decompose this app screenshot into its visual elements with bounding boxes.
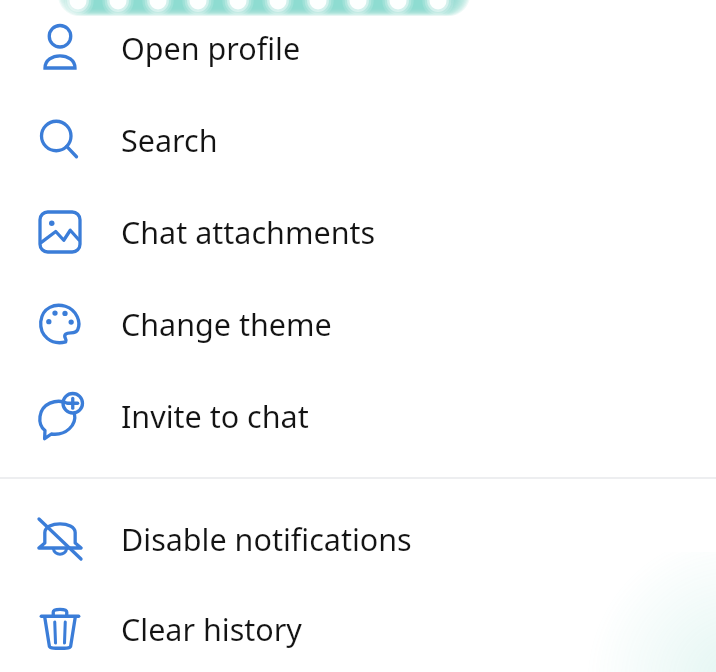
staticText: Chat attachments — [121, 211, 376, 253]
button[interactable]: Chat attachments — [0, 186, 716, 278]
button[interactable]: Open profile — [0, 2, 716, 94]
staticText: Search — [121, 119, 218, 161]
staticText: Invite to chat — [121, 395, 309, 437]
staticText: Clear history — [121, 608, 302, 650]
button[interactable]: Clear history — [0, 585, 716, 672]
button[interactable]: Disable notifications — [0, 493, 716, 585]
staticText: Disable notifications — [121, 518, 412, 560]
button[interactable]: Invite to chat — [0, 370, 716, 462]
staticText: Open profile — [121, 27, 301, 69]
button[interactable]: Change theme — [0, 278, 716, 370]
staticText: Change theme — [121, 303, 332, 345]
button[interactable]: Search — [0, 94, 716, 186]
